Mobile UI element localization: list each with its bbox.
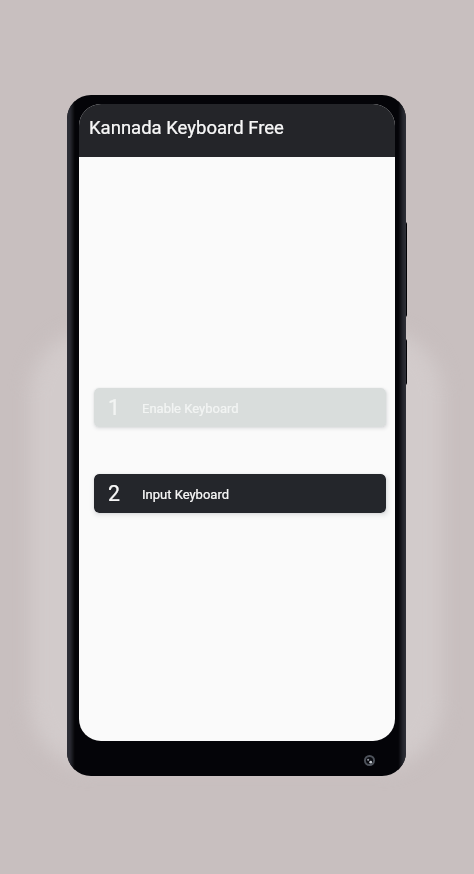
staticText: Kannada Keyboard Free: [89, 117, 284, 139]
staticText: Enable Keyboard: [142, 401, 239, 416]
button[interactable]: 1: [94, 388, 386, 427]
staticText: 2: [108, 481, 120, 506]
staticText: Input Keyboard: [142, 487, 230, 502]
staticText: 1: [108, 395, 120, 420]
button[interactable]: 2: [94, 474, 386, 513]
other: Power: [398, 339, 407, 385]
other: Volume: [398, 222, 407, 317]
